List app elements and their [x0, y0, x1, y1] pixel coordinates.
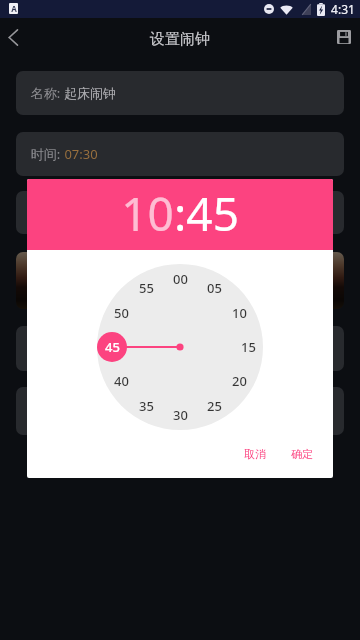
staticText: 07:30	[64, 145, 98, 163]
button[interactable]: 确定	[283, 439, 321, 469]
staticText: :45	[174, 182, 239, 245]
staticText: 45	[105, 338, 120, 356]
button[interactable]	[16, 191, 344, 234]
staticText: 取消	[244, 447, 266, 461]
button[interactable]: Select minutes	[97, 264, 263, 430]
staticText: 30	[173, 406, 188, 424]
staticText: 时间:	[27, 145, 64, 163]
staticText: 40	[114, 372, 129, 390]
staticText: 10	[232, 304, 247, 322]
staticText: 05	[207, 279, 222, 297]
button[interactable]	[16, 326, 344, 371]
staticText: 10	[121, 182, 174, 245]
staticText: 4:31	[331, 1, 355, 17]
staticText: 35	[139, 397, 154, 415]
staticText: 设置闹钟	[150, 30, 210, 49]
staticText: 00	[173, 270, 188, 288]
button[interactable]: 时间:	[16, 132, 344, 176]
staticText: A	[11, 3, 17, 14]
staticText: 15	[241, 338, 256, 356]
staticText: 25	[207, 397, 222, 415]
staticText: 起床闹钟	[64, 85, 116, 101]
button[interactable]: Save	[321, 18, 360, 56]
staticText: 名称:	[27, 84, 64, 102]
button[interactable]	[16, 252, 344, 309]
staticText: 55	[139, 279, 154, 297]
button[interactable]: 取消	[236, 439, 274, 469]
button[interactable]: Back	[0, 18, 36, 56]
button[interactable]: 名称:	[16, 71, 344, 115]
staticText: 确定	[291, 447, 313, 461]
staticText: 20	[232, 372, 247, 390]
button[interactable]	[16, 387, 344, 435]
staticText: 50	[114, 304, 129, 322]
